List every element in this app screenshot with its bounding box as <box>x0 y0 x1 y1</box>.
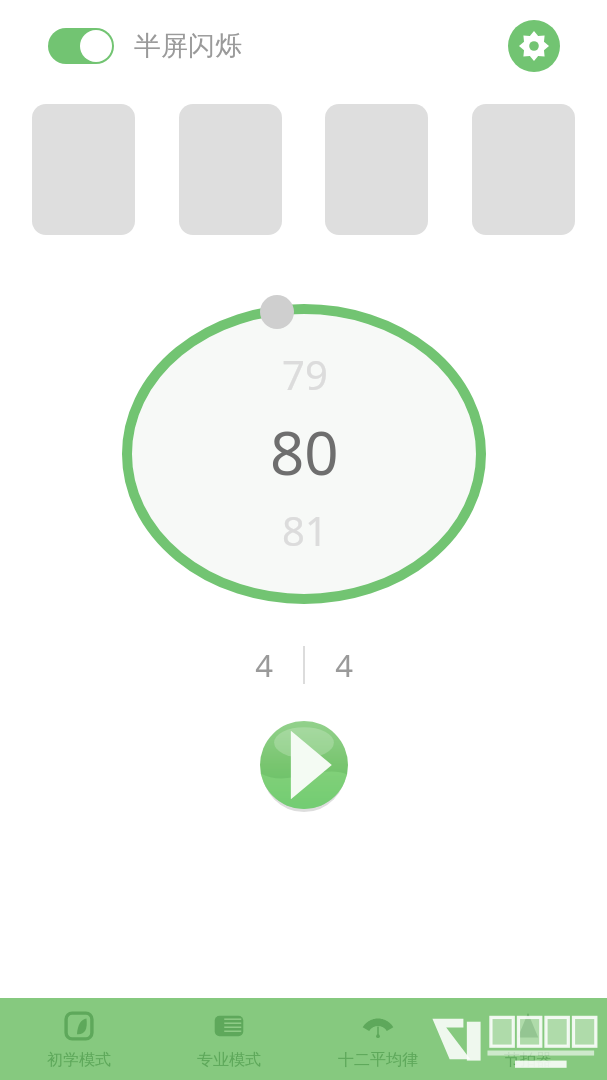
staticText: 80 <box>270 411 339 493</box>
button[interactable] <box>325 104 428 235</box>
button[interactable]: 半屏闪烁 <box>48 28 242 64</box>
button[interactable]: Tempo dial <box>114 294 494 610</box>
staticText: 4 <box>335 644 353 686</box>
button[interactable]: 4 <box>225 635 303 695</box>
button[interactable] <box>472 104 575 235</box>
button[interactable]: 专业模式 <box>159 1003 299 1076</box>
staticText: 79 <box>282 347 328 401</box>
staticText: 十二平均律 <box>338 1050 418 1070</box>
button[interactable]: Play <box>260 721 348 809</box>
staticText: 半屏闪烁 <box>134 29 242 63</box>
button[interactable]: Settings <box>508 20 560 72</box>
button[interactable]: 4 <box>305 635 383 695</box>
staticText: 4 <box>255 644 273 686</box>
button[interactable]: 十二平均律 <box>308 1003 448 1076</box>
staticText: 节拍器 <box>504 1050 552 1070</box>
button[interactable]: 初学模式 <box>9 1003 149 1076</box>
button[interactable] <box>32 104 135 235</box>
button[interactable]: 节拍器 <box>458 1003 598 1076</box>
button[interactable] <box>179 104 282 235</box>
staticText: 初学模式 <box>47 1050 111 1070</box>
staticText: 81 <box>282 503 328 557</box>
staticText: 专业模式 <box>197 1050 261 1070</box>
